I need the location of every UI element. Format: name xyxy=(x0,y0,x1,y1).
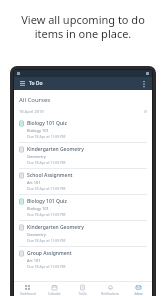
staticText: Calendar xyxy=(48,292,61,296)
staticText: Biology 101 Quiz xyxy=(27,120,67,127)
staticText: All Courses xyxy=(19,96,51,104)
button[interactable]: Kindergarten Geometry xyxy=(14,143,152,168)
button[interactable]: More options xyxy=(139,79,148,88)
staticText: To Do xyxy=(29,80,43,87)
button[interactable]: All Courses xyxy=(14,95,152,105)
button[interactable]: Biology 101 Quiz xyxy=(14,195,152,220)
staticText: Geometry xyxy=(27,232,46,237)
button[interactable]: School Assignment xyxy=(14,169,152,194)
staticText: Art 101 xyxy=(27,180,41,185)
staticText: Inbox xyxy=(134,292,143,296)
button[interactable]: Group Assignment xyxy=(14,247,152,272)
staticText: School Assignment xyxy=(27,172,73,179)
staticText: Group Assignment xyxy=(27,250,72,257)
button[interactable]: Dashboard xyxy=(14,282,41,296)
staticText: Geometry xyxy=(27,154,46,159)
staticText: Biology 101 xyxy=(27,206,49,211)
staticText: Kindergarten Geometry xyxy=(27,224,84,231)
button[interactable]: Inbox xyxy=(124,282,152,296)
staticText: To Do xyxy=(78,292,87,296)
staticText: Biology 101 Quiz xyxy=(27,198,67,205)
staticText: Due 18 Apr at 11:59 PM xyxy=(27,160,66,165)
button[interactable]: Biology 101 Quiz xyxy=(14,117,152,142)
button[interactable]: Menu xyxy=(18,79,27,88)
staticText: Due 18 Apr at 11:59 PM xyxy=(27,264,66,269)
staticText: Kindergarten Geometry xyxy=(27,146,84,153)
staticText: Due 18 Apr at 11:59 PM xyxy=(27,134,66,139)
staticText: Due 18 Apr at 11:59 PM xyxy=(27,186,66,191)
staticText: Due 18 Apr at 11:59 PM xyxy=(27,212,66,217)
button[interactable]: Kindergarten Geometry xyxy=(14,221,152,246)
button[interactable]: To Do xyxy=(68,282,96,296)
staticText: Art 101 xyxy=(27,258,41,263)
staticText: Due 18 Apr at 11:59 PM xyxy=(27,238,66,243)
staticText: View all upcoming to do items in one pla… xyxy=(21,12,145,41)
staticText: Biology 101 xyxy=(27,128,49,133)
staticText: Dashboard xyxy=(20,292,36,296)
staticText: 18 April 2019 xyxy=(19,109,44,114)
staticText: Notifications xyxy=(101,292,119,296)
button[interactable]: Calendar xyxy=(41,282,68,296)
button[interactable]: Notifications xyxy=(96,282,124,296)
